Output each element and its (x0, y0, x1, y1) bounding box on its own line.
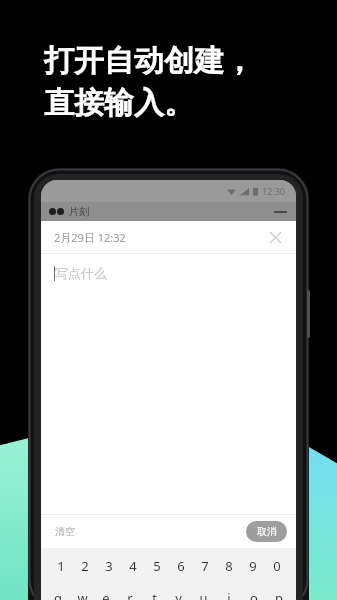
staticText: 7 (201, 557, 209, 575)
button[interactable]: 清空 (49, 521, 81, 542)
staticText: 直接输入。 (44, 84, 194, 122)
staticText: 5 (153, 557, 161, 575)
button[interactable]: u (191, 589, 216, 600)
staticText: u (199, 589, 208, 600)
button[interactable]: 3 (97, 557, 121, 575)
button[interactable]: q (46, 589, 70, 600)
button[interactable]: 9 (241, 557, 265, 575)
button[interactable]: w (70, 589, 94, 600)
button[interactable]: o (241, 589, 266, 600)
button[interactable]: r (118, 589, 142, 600)
staticText: i (227, 589, 231, 600)
staticText: 6 (177, 557, 185, 575)
button[interactable]: 取消 (246, 521, 287, 542)
staticText: o (250, 589, 258, 600)
button[interactable]: 6 (169, 557, 193, 575)
staticText: 清空 (55, 525, 75, 538)
button[interactable]: y (166, 589, 191, 600)
button[interactable]: 5 (145, 557, 169, 575)
staticText: w (77, 589, 88, 600)
staticText: y (175, 589, 182, 600)
staticText: 8 (225, 557, 233, 575)
staticText: e (102, 589, 110, 600)
button[interactable]: Close (264, 226, 286, 248)
staticText: 4 (129, 557, 137, 575)
button[interactable]: 7 (193, 557, 217, 575)
button[interactable]: 写点什么 (54, 265, 296, 281)
staticText: 打开自动创建， (44, 42, 254, 80)
staticText: r (127, 589, 133, 600)
button[interactable]: e (94, 589, 118, 600)
staticText: 写点什么 (55, 265, 107, 281)
staticText: 2 (81, 557, 89, 575)
staticText: 1 (57, 557, 65, 575)
staticText: p (275, 589, 283, 600)
staticText: 取消 (257, 525, 277, 538)
staticText: 片刻 (69, 205, 89, 218)
button[interactable]: 2 (73, 557, 97, 575)
staticText: 3 (105, 557, 113, 575)
button[interactable]: 8 (217, 557, 241, 575)
button[interactable]: 0 (265, 557, 289, 575)
button[interactable]: Power (307, 290, 310, 338)
staticText: 0 (273, 557, 281, 575)
button[interactable]: p (266, 589, 291, 600)
staticText: 12:30 (262, 185, 286, 197)
button[interactable]: t (142, 589, 166, 600)
staticText: t (152, 589, 157, 600)
staticText: q (54, 589, 62, 600)
staticText: 9 (249, 557, 257, 575)
staticText: 2月29日 12:32 (54, 230, 126, 245)
button[interactable]: 4 (121, 557, 145, 575)
button[interactable]: i (216, 589, 241, 600)
button[interactable]: 1 (48, 557, 73, 575)
